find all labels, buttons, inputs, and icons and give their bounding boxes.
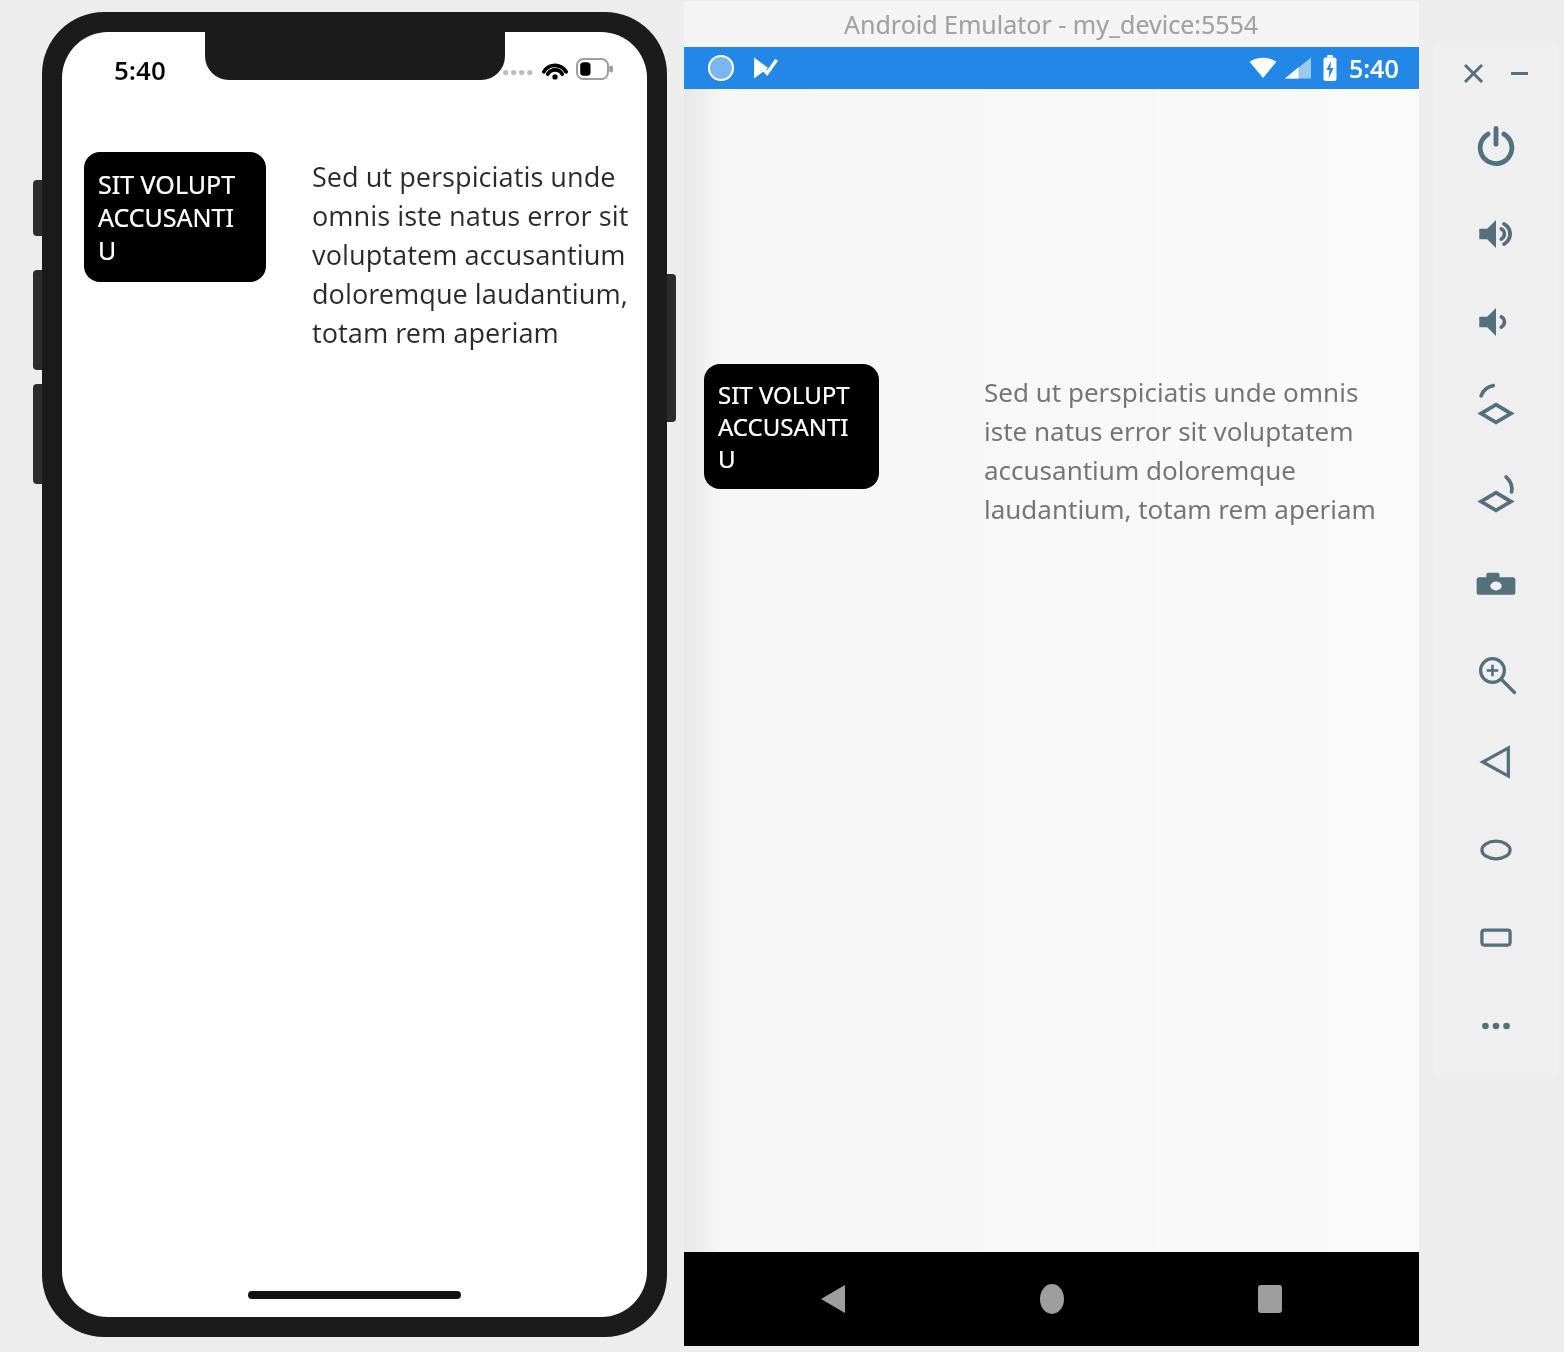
staticText: Sed ut perspiciatis unde omnis iste natu… xyxy=(984,374,1407,526)
button[interactable]: Home xyxy=(1434,806,1558,894)
staticText: 5:40 xyxy=(114,52,166,87)
staticText: Sed ut perspiciatis unde omnis iste natu… xyxy=(312,158,637,351)
button[interactable]: Rotate left xyxy=(1434,366,1558,454)
staticText: Android Emulator - my_device:5554 xyxy=(844,7,1259,41)
button[interactable]: SIT VOLUPT ACCUSANTIU xyxy=(704,364,879,489)
staticText: SIT VOLUPT ACCUSANTIU xyxy=(718,378,865,475)
button[interactable]: Take screenshot xyxy=(1434,542,1558,630)
button[interactable]: SIT VOLUPT ACCUSANTIU xyxy=(84,152,266,282)
button[interactable]: Volume up xyxy=(1434,190,1558,278)
button[interactable]: Power xyxy=(1434,102,1558,190)
button[interactable]: Rotate right xyxy=(1434,454,1558,542)
button[interactable]: Overview xyxy=(1434,894,1558,982)
button[interactable]: Zoom xyxy=(1434,630,1558,718)
button[interactable]: Recent apps xyxy=(1241,1270,1299,1328)
staticText: SIT VOLUPT ACCUSANTIU xyxy=(98,167,252,267)
button[interactable]: More xyxy=(1434,982,1558,1070)
button[interactable]: Home xyxy=(1023,1270,1081,1328)
button[interactable]: Minimize xyxy=(1502,56,1536,90)
button[interactable]: Volume down xyxy=(1434,278,1558,366)
button[interactable]: Back xyxy=(1434,718,1558,806)
button[interactable]: Close xyxy=(1456,56,1490,90)
staticText: 5:40 xyxy=(1349,51,1399,85)
button[interactable]: Back xyxy=(804,1270,862,1328)
